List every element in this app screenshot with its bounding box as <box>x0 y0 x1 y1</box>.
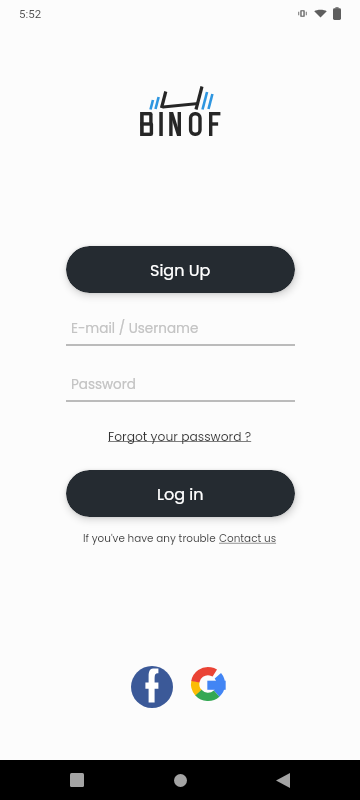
button[interactable]: Sign Up <box>66 246 295 293</box>
staticText: Log in <box>157 483 204 505</box>
button[interactable]: Home <box>156 760 204 800</box>
button[interactable]: Back <box>259 760 307 800</box>
button[interactable]: E-mail / Username <box>66 313 295 346</box>
button[interactable]: Sign in with Google <box>189 665 229 703</box>
button[interactable]: Forgot your password ? <box>106 427 254 446</box>
button[interactable]: Sign in with Facebook <box>131 666 173 708</box>
button[interactable]: Contact us <box>219 531 277 546</box>
staticText: E-mail / Username <box>71 319 199 338</box>
staticText: Password <box>71 375 136 394</box>
button[interactable]: Recent apps <box>53 760 101 800</box>
staticText: Sign Up <box>150 259 211 281</box>
staticText: If you've have any trouble <box>83 531 219 546</box>
button[interactable]: Log in <box>66 470 295 517</box>
button[interactable]: Password <box>66 369 295 402</box>
staticText: 5:52 <box>19 7 42 20</box>
